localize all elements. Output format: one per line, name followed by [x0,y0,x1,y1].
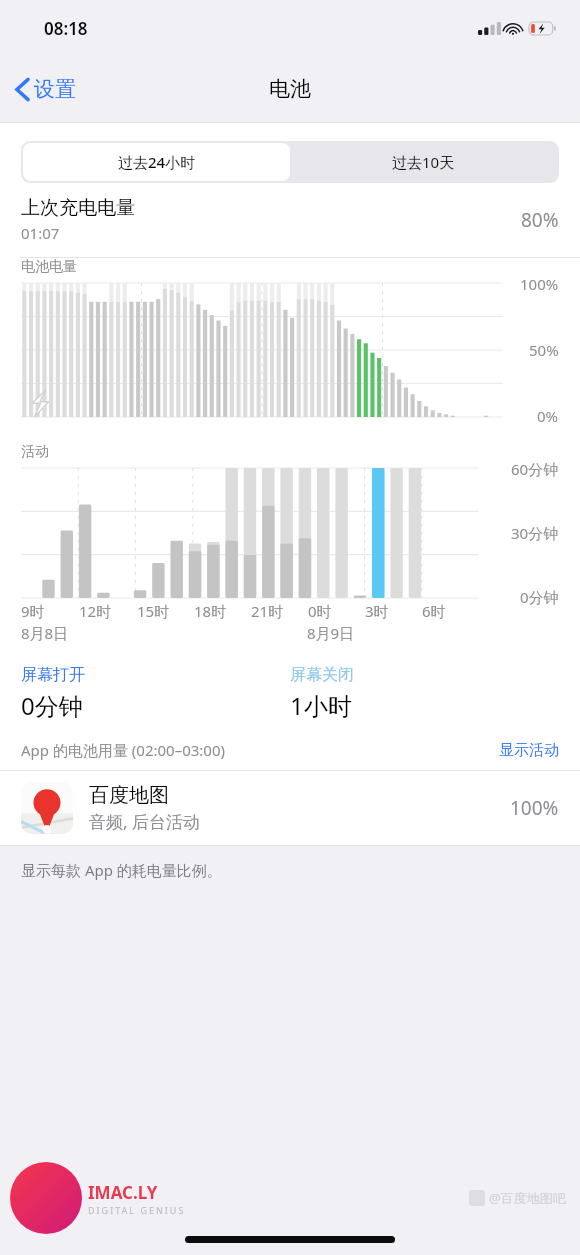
staticText: 100% [510,795,559,821]
staticText: 8月9日 [307,623,355,643]
staticText: 电池 [269,76,311,102]
staticText: 音频, 后台活动 [89,810,200,833]
staticText: 电池电量 [21,258,77,276]
staticText: @百度地图吧 [489,1189,566,1207]
staticText: 0分钟 [21,689,83,722]
staticText: 屏幕打开 [21,665,85,685]
button[interactable]: 上次充电电量 [0,194,580,257]
button[interactable]: 设置 [0,70,86,108]
staticText: 设置 [34,76,76,102]
staticText: 过去10天 [392,152,455,172]
staticText: 80% [521,207,559,233]
staticText: 15时 [137,601,170,621]
staticText: 6时 [422,601,446,621]
staticText: 50% [529,340,559,360]
staticText: 60分钟 [511,459,559,479]
staticText: 18时 [194,601,227,621]
staticText: 12时 [79,601,112,621]
staticText: 过去24小时 [118,152,196,172]
staticText: 0时 [308,601,332,621]
staticText: 9时 [21,601,45,621]
staticText: 21时 [251,601,284,621]
button[interactable]: 显示活动 [499,741,559,760]
staticText: 30分钟 [511,523,559,543]
staticText: 0% [537,406,559,426]
button[interactable]: 过去10天 [290,143,557,181]
staticText: DIGITAL GENIUS [88,1204,186,1216]
staticText: 活动 [21,443,49,461]
staticText: 1小时 [290,689,352,722]
staticText: IMAC.LY [88,1181,158,1204]
staticText: App 的电池用量 (02:00–03:00) [21,740,499,760]
staticText: 上次充电电量 [21,196,135,220]
staticText: 百度地图 [89,783,169,808]
staticText: 显示每款 App 的耗电量比例。 [21,860,222,880]
staticText: 100% [520,274,559,294]
staticText: 屏幕关闭 [290,665,354,685]
staticText: 3时 [365,601,389,621]
staticText: 显示活动 [499,741,559,760]
staticText: 0分钟 [520,587,559,607]
button[interactable]: 过去24小时 [23,143,290,181]
staticText: 01:07 [21,223,60,243]
staticText: 08:18 [44,17,88,40]
button[interactable]: 百度地图 [0,771,580,845]
staticText: 8月8日 [21,623,69,643]
